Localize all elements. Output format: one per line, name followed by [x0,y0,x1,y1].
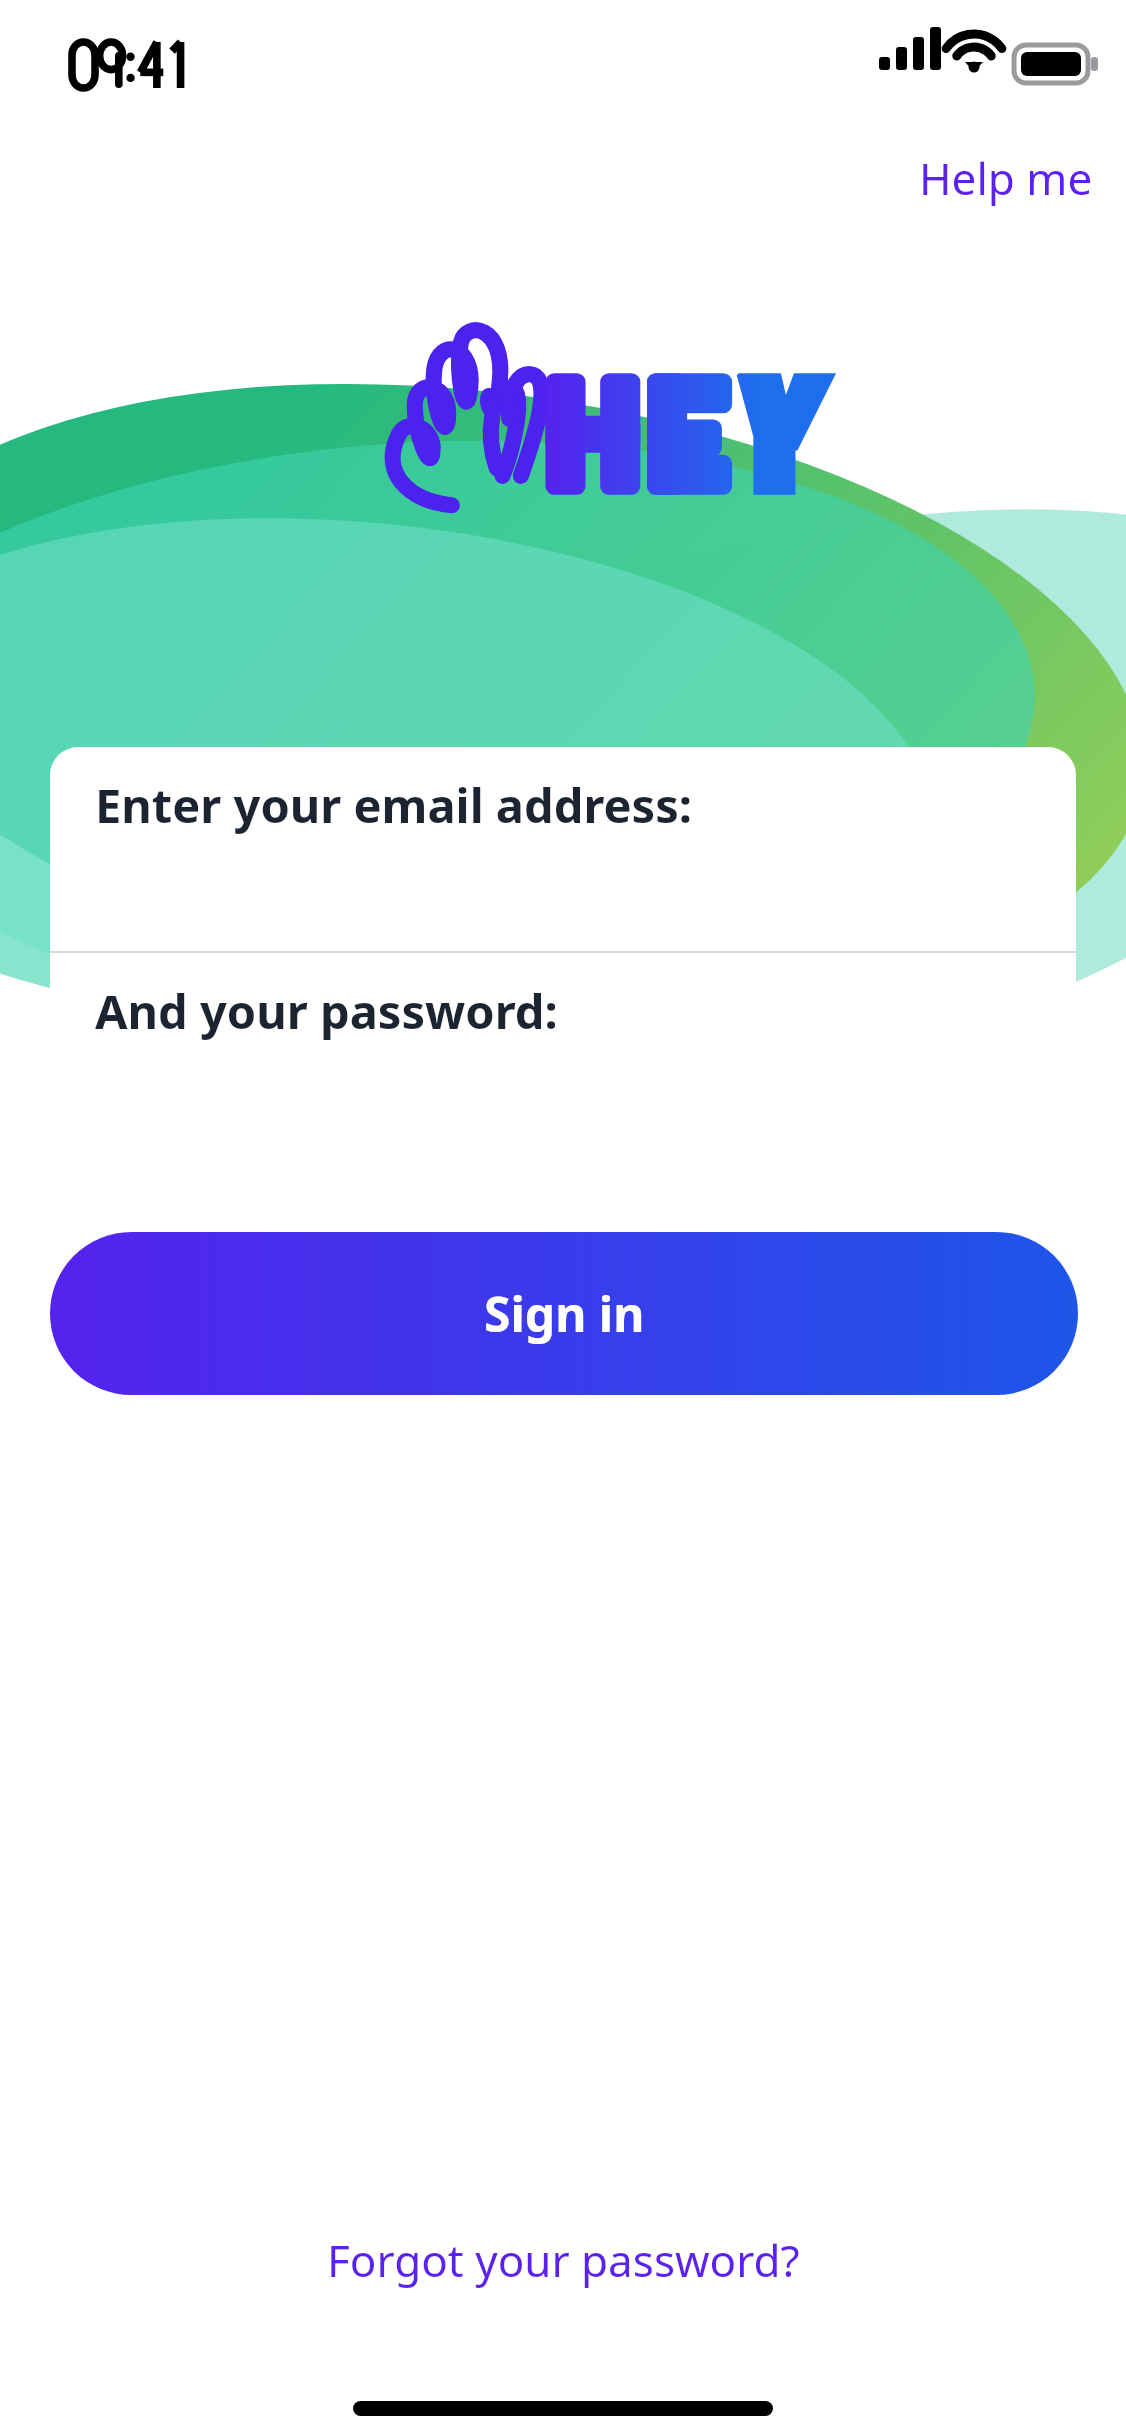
button[interactable]: Sign in [50,1232,1078,1395]
other: HEY logo [368,320,758,510]
button[interactable]: Help me [886,136,1126,220]
button[interactable]: Forgot your password? [301,2218,826,2302]
staticText: Help me [919,148,1093,208]
staticText: And your password: [95,979,558,1043]
staticText: Sign in [484,1281,645,1346]
staticText: Enter your email address: [95,773,692,837]
button[interactable]: And your password: [50,953,1076,1157]
staticText: Forgot your password? [327,2230,800,2290]
button[interactable]: Enter your email address: [50,747,1076,951]
